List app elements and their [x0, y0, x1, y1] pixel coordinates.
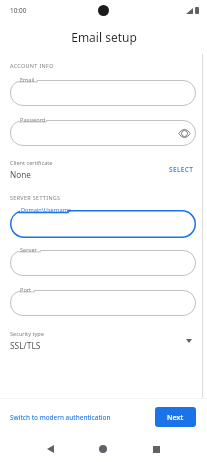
button[interactable]: Recent apps: [145, 438, 167, 460]
staticText: SERVER SETTINGS: [10, 194, 61, 201]
staticText: Domain\Username: [21, 206, 72, 214]
button[interactable]: Security type: [10, 330, 196, 351]
staticText: Email setup: [71, 29, 137, 45]
staticText: ACCOUNT INFO: [10, 62, 54, 69]
staticText: SELECT: [169, 165, 194, 174]
staticText: Server: [20, 246, 37, 254]
staticText: Client certificate: [10, 159, 53, 167]
button[interactable]: Switch to modern authentication: [8, 410, 113, 425]
staticText: Next: [167, 412, 184, 422]
staticText: Password: [20, 116, 46, 124]
button[interactable]: Email: [10, 80, 196, 106]
staticText: Email: [20, 76, 35, 84]
staticText: 10:00: [10, 6, 27, 15]
button[interactable]: Port: [10, 290, 196, 316]
staticText: Port: [20, 286, 32, 294]
staticText: SSL/TLS: [10, 340, 41, 351]
staticText: Security type: [10, 330, 44, 338]
button[interactable]: Password: [10, 120, 196, 146]
button[interactable]: Home: [92, 438, 114, 460]
button[interactable]: Domain\Username: [10, 210, 196, 238]
staticText: Switch to modern authentication: [10, 413, 111, 422]
button[interactable]: Next: [155, 407, 196, 427]
button[interactable]: Server: [10, 250, 196, 276]
button[interactable]: Client certificate: [10, 159, 196, 180]
staticText: None: [10, 169, 31, 180]
button[interactable]: Back: [39, 438, 61, 460]
button[interactable]: Show password: [178, 127, 191, 140]
